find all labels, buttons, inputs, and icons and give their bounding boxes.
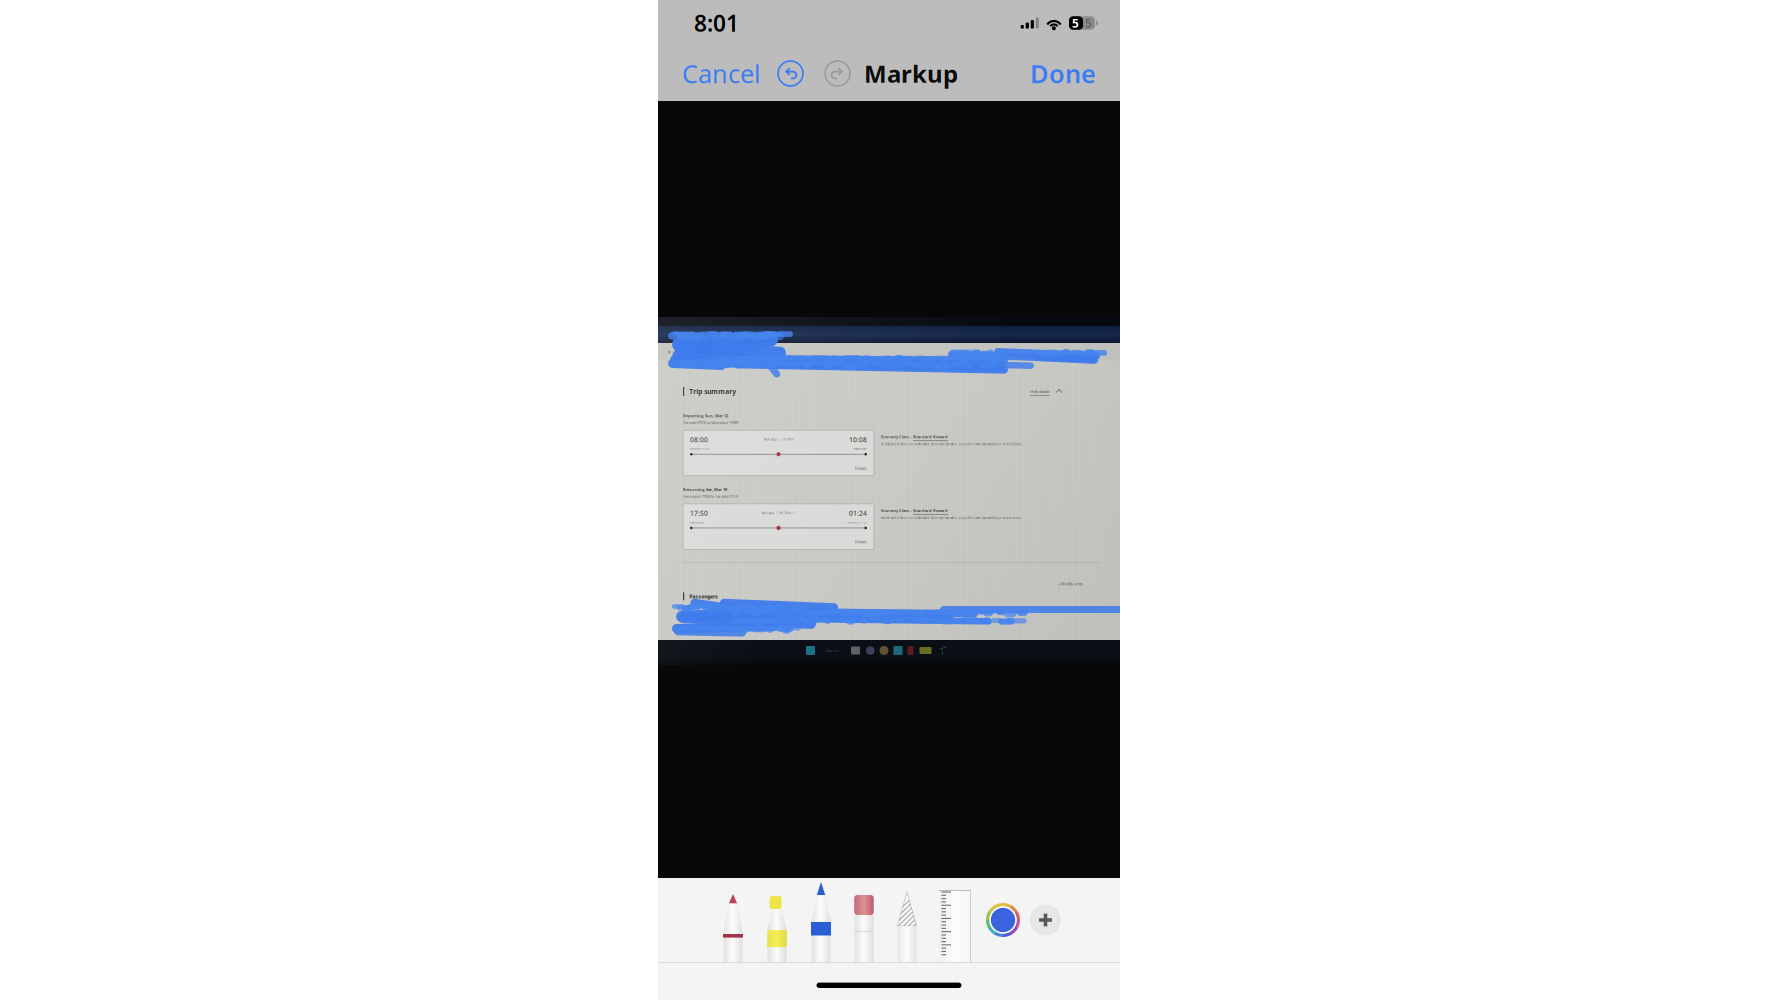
staticText: Details <box>855 465 867 471</box>
staticText: 08:00 <box>690 435 708 444</box>
staticText: Hide details <box>1030 389 1050 394</box>
staticText: Toronto (YYZ) <box>690 447 710 450</box>
staticText: Vancouver (YVR) to Toronto (YTO) <box>683 493 738 499</box>
button[interactable]: Highlighter <box>767 878 787 968</box>
staticText: Economy Class - <box>881 434 911 439</box>
staticText: Vancouver <box>690 521 704 524</box>
staticText: Non-stop | 5h 08m <box>764 438 793 441</box>
staticText: Markup <box>864 58 958 89</box>
staticText: 01:24 <box>849 509 867 518</box>
staticText: Trip summary <box>689 387 736 396</box>
button[interactable]: Eraser <box>854 878 874 968</box>
staticText: Passengers <box>689 593 718 600</box>
staticText: Stretch and relax in our comfortable Eco… <box>881 516 1022 520</box>
button[interactable]: Redo <box>821 57 854 90</box>
button[interactable]: Color <box>981 898 1025 942</box>
staticText: Toronto (YYZ) <box>847 521 867 524</box>
staticText: 8:01 <box>694 8 739 38</box>
button[interactable]: Marker <box>811 878 831 968</box>
button[interactable]: Undo <box>774 57 807 90</box>
staticText: 10:08 <box>849 435 867 444</box>
staticText: 5 <box>1085 15 1092 31</box>
staticText: 17:50 <box>690 509 708 518</box>
button[interactable]: Pen <box>723 878 743 968</box>
staticText: 5 <box>1072 15 1079 31</box>
button[interactable]: Cancel <box>682 49 761 98</box>
staticText: Departing Sun, Mar 12 <box>683 413 728 418</box>
staticText: Standard Reward <box>913 508 948 513</box>
staticText: Search <box>826 648 838 653</box>
staticText: Returning Sat, Mar 18 <box>683 487 727 492</box>
button[interactable]: Lasso <box>897 878 917 968</box>
button[interactable]: Add <box>1025 899 1066 940</box>
staticText: Toronto (YTO) to Vancouver (YVR) <box>683 420 738 425</box>
staticText: Economy Class - <box>881 508 911 513</box>
button[interactable]: Done <box>1030 49 1096 98</box>
staticText: Cancel <box>682 57 761 90</box>
staticText: Done <box>1030 57 1096 90</box>
staticText: Non-stop | 4h 34m +1 <box>761 511 795 515</box>
staticText: Sit back and relax in our comfortable Ec… <box>881 442 1022 446</box>
staticText: Standard Reward <box>913 434 948 439</box>
staticText: Details <box>855 539 867 544</box>
button[interactable]: Ruler <box>939 878 972 968</box>
staticText: Vancouver <box>853 447 867 450</box>
staticText: + Modify seats <box>1058 581 1083 586</box>
